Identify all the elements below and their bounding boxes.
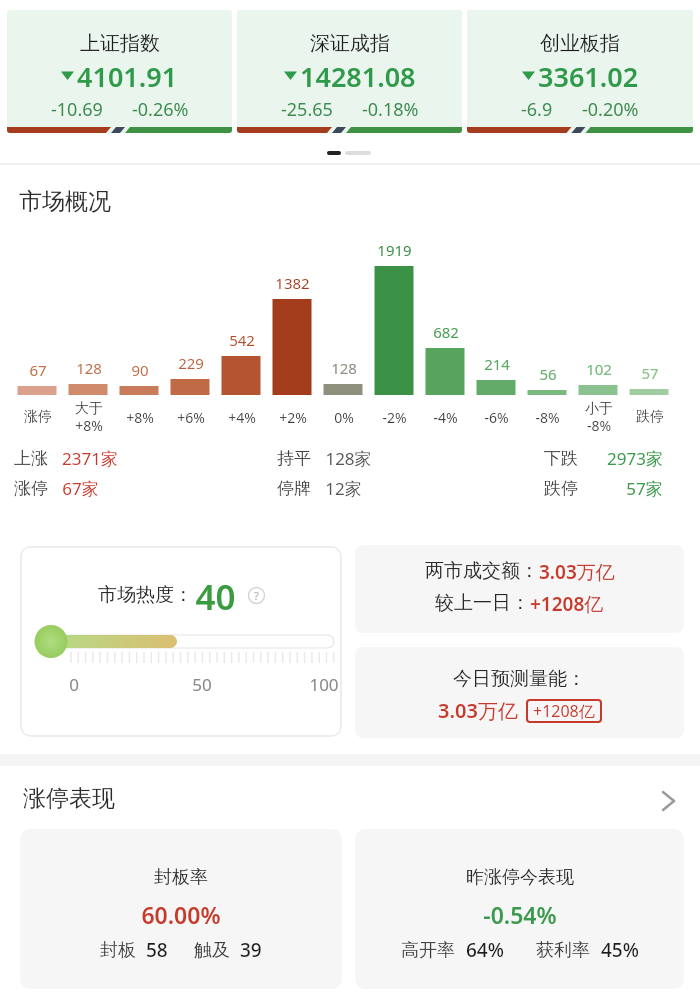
staticText: ? <box>254 588 259 603</box>
staticText: 45% <box>601 937 639 963</box>
button[interactable]: 深证成指 <box>237 10 462 133</box>
staticText: 大于 +8% <box>75 400 103 435</box>
staticText: -0.18% <box>362 97 419 121</box>
staticText: 39 <box>240 937 262 963</box>
staticText: 229 <box>178 353 204 373</box>
staticText: 3.03万亿 <box>539 559 615 583</box>
button[interactable] <box>660 790 678 812</box>
staticText: 60.00% <box>141 899 221 927</box>
button[interactable]: 封板率 <box>20 829 342 989</box>
staticText: 2371家 <box>62 447 118 469</box>
staticText: 跌停 <box>636 408 664 426</box>
staticText: 0 <box>69 673 79 696</box>
staticText: 56 <box>539 364 557 384</box>
staticText: 创业板指 <box>540 31 620 56</box>
staticText: 下跌 <box>544 448 578 469</box>
staticText: 64% <box>466 937 504 963</box>
staticText: 57 <box>641 363 659 383</box>
button[interactable]: 上证指数 <box>7 10 232 133</box>
staticText: -2% <box>382 408 407 427</box>
staticText: 542 <box>229 330 255 350</box>
staticText: 停牌 <box>277 478 311 499</box>
staticText: 128 <box>76 358 102 378</box>
staticText: 2973家 <box>607 447 663 469</box>
button[interactable]: 今日预测量能： <box>355 647 684 738</box>
staticText: 触及 <box>194 939 230 962</box>
staticText: 市场热度： <box>98 583 193 607</box>
staticText: -8% <box>535 408 560 427</box>
staticText: 两市成交额： <box>425 559 539 583</box>
staticText: 0% <box>334 408 354 427</box>
staticText: -0.54% <box>483 899 557 927</box>
staticText: +1208亿 <box>530 591 604 615</box>
staticText: +4% <box>228 408 256 427</box>
staticText: 上证指数 <box>80 31 160 56</box>
staticText: 上涨 <box>14 448 48 469</box>
staticText: -6.9 <box>521 97 553 121</box>
staticText: 深证成指 <box>310 31 390 56</box>
staticText: 较上一日： <box>435 591 530 615</box>
staticText: 102 <box>586 359 612 379</box>
staticText: 40 <box>195 573 236 613</box>
staticText: -25.65 <box>281 97 333 121</box>
staticText: -0.20% <box>582 97 639 121</box>
staticText: 封板率 <box>154 866 208 889</box>
button[interactable]: 创业板指 <box>467 10 693 133</box>
staticText: 50 <box>192 673 212 696</box>
staticText: 高开率 <box>401 939 455 962</box>
staticText: 持平 <box>277 448 311 469</box>
staticText: 获利率 <box>536 939 590 962</box>
staticText: 封板 <box>100 939 136 962</box>
staticText: +2% <box>279 408 307 427</box>
staticText: 12家 <box>325 477 362 499</box>
staticText: 90 <box>131 360 149 380</box>
staticText: 4101.91 <box>77 58 178 91</box>
staticText: 跌停 <box>544 478 578 499</box>
staticText: -0.26% <box>132 97 189 121</box>
staticText: +6% <box>177 408 205 427</box>
staticText: 682 <box>433 322 459 342</box>
staticText: 昨涨停今表现 <box>466 866 574 889</box>
staticText: 128家 <box>325 447 372 469</box>
staticText: 今日预测量能： <box>453 667 586 691</box>
button[interactable]: 昨涨停今表现 <box>355 829 684 989</box>
staticText: -4% <box>433 408 458 427</box>
staticText: 市场概况 <box>19 187 111 216</box>
staticText: 涨停表现 <box>23 784 115 812</box>
staticText: 小于 -8% <box>585 400 613 435</box>
button[interactable]: 市场热度： <box>20 546 342 737</box>
staticText: 3.03万亿 <box>438 697 518 724</box>
staticText: 1382 <box>275 273 310 293</box>
staticText: -6% <box>484 408 509 427</box>
staticText: 1919 <box>377 240 412 260</box>
staticText: 100 <box>309 673 339 696</box>
staticText: 涨停 <box>24 408 52 426</box>
staticText: 3361.02 <box>538 58 639 91</box>
staticText: 214 <box>484 354 510 374</box>
staticText: +1208亿 <box>533 700 595 722</box>
button[interactable]: 两市成交额： <box>355 545 684 633</box>
staticText: +8% <box>126 408 154 427</box>
staticText: 14281.08 <box>300 58 416 91</box>
staticText: 67家 <box>62 477 99 499</box>
staticText: 67 <box>29 360 47 380</box>
staticText: 128 <box>331 358 357 378</box>
staticText: 58 <box>146 937 168 963</box>
staticText: 57家 <box>626 477 663 499</box>
staticText: 涨停 <box>14 478 48 499</box>
staticText: -10.69 <box>51 97 103 121</box>
